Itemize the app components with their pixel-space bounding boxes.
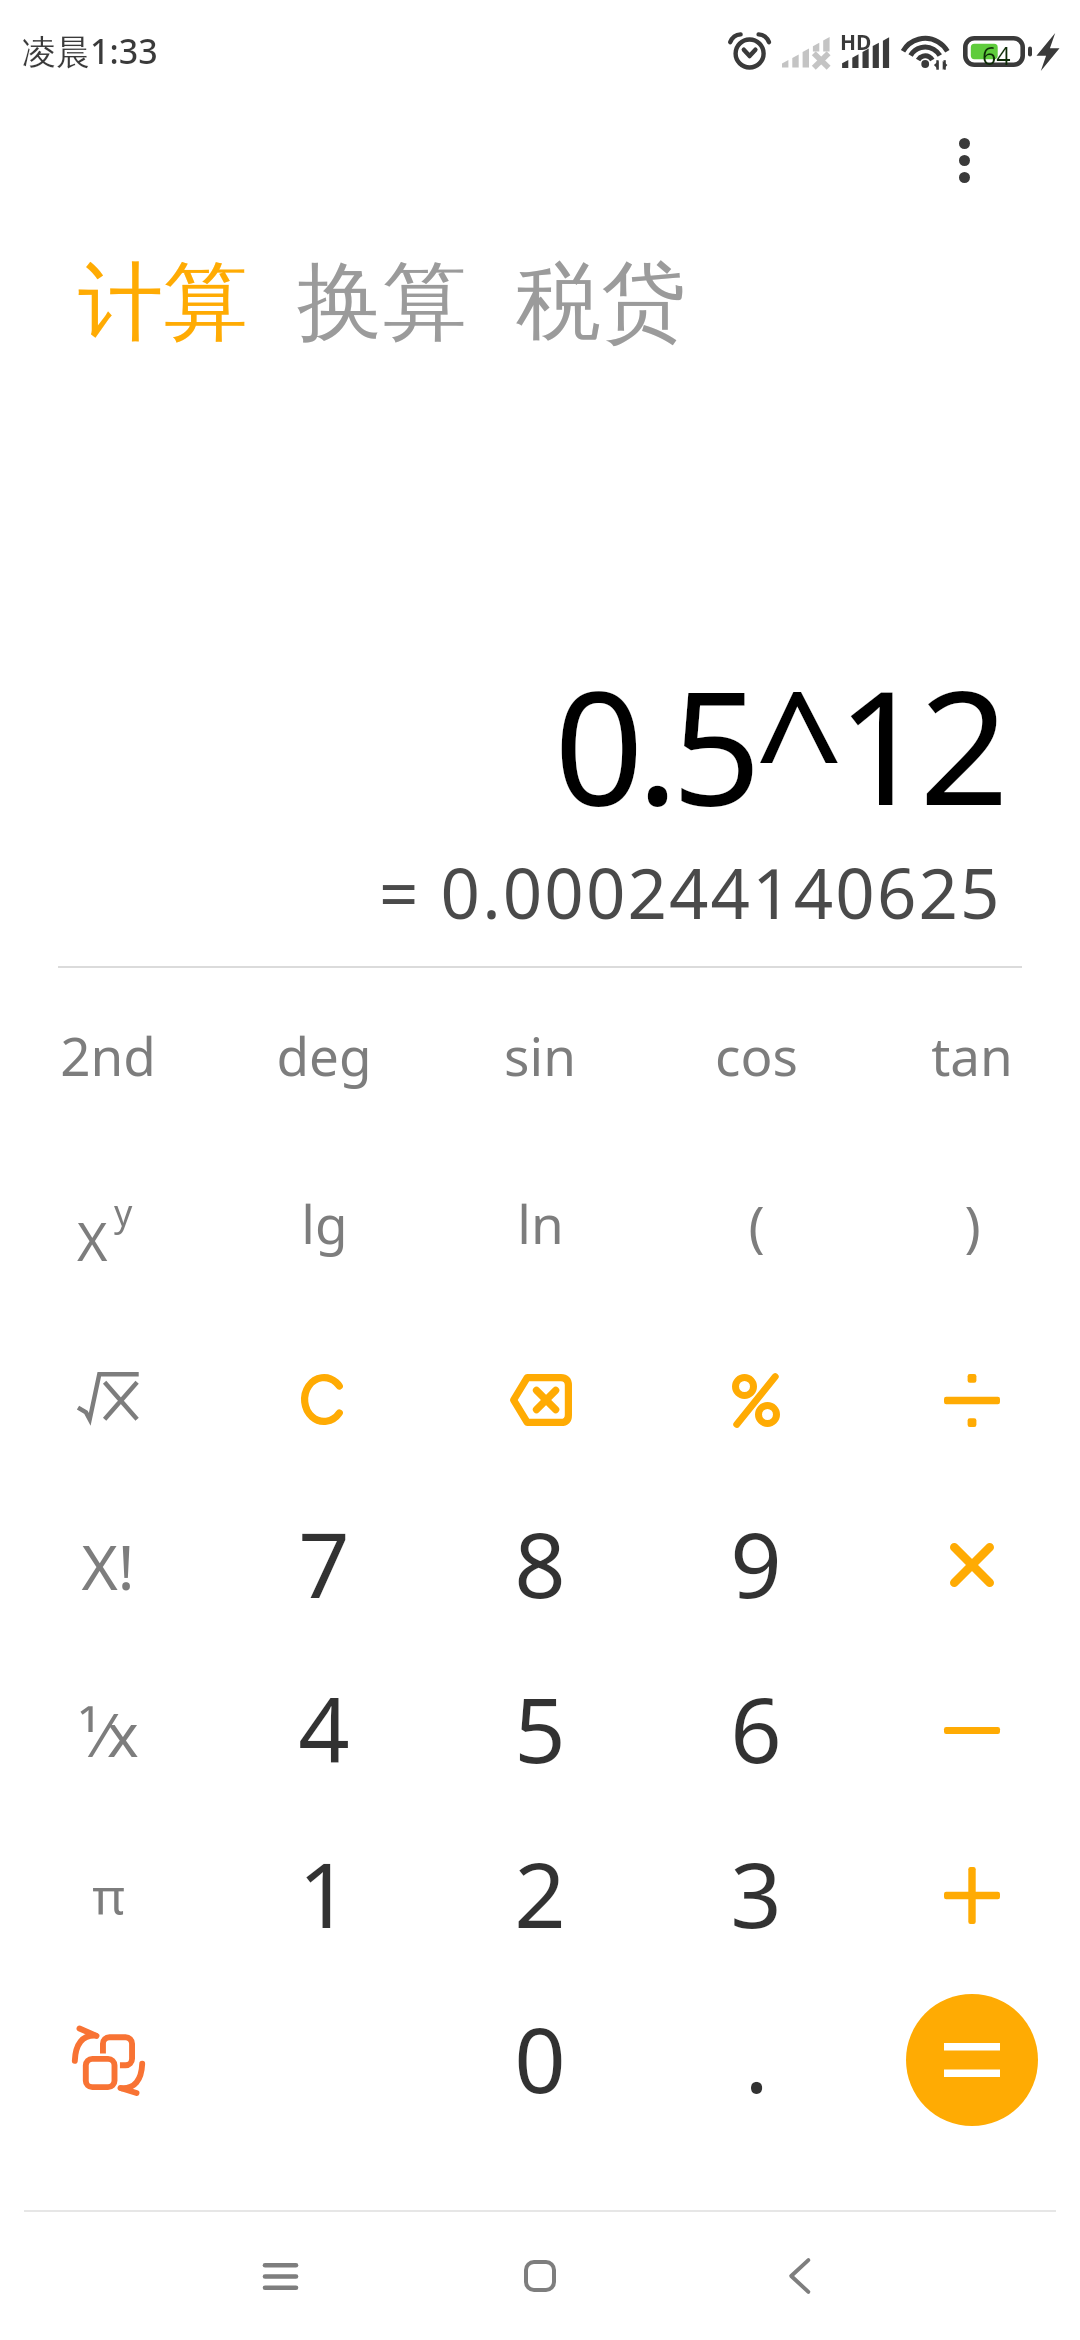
staticText: 6 <box>730 1667 782 1790</box>
staticText: ¹⁄x <box>78 1693 139 1775</box>
button[interactable]: cos <box>648 970 864 1139</box>
button[interactable]: 3 <box>648 1809 864 1978</box>
button[interactable]: π <box>0 1811 216 1980</box>
button[interactable]: Multiply <box>864 1480 1080 1649</box>
button[interactable]: . <box>648 1974 864 2143</box>
staticText: 4 <box>298 1667 350 1790</box>
button[interactable]: Divide <box>864 1316 1080 1485</box>
button[interactable]: ) <box>864 1140 1080 1309</box>
staticText: lg <box>301 1187 348 1259</box>
button[interactable]: 计算 <box>78 249 248 356</box>
button[interactable]: 9 <box>648 1479 864 1648</box>
staticText: 0 <box>514 1997 566 2120</box>
button[interactable]: Minus <box>864 1646 1080 1815</box>
button[interactable]: 6 <box>648 1644 864 1813</box>
staticText: 1 <box>298 1832 350 1955</box>
staticText: ( <box>748 1188 765 1262</box>
button[interactable]: 税贷 <box>516 249 686 356</box>
staticText: 5 <box>514 1667 566 1790</box>
staticText: 0.5^12 <box>554 637 1002 817</box>
staticText: ln <box>517 1187 564 1259</box>
staticText: 8 <box>514 1502 566 1625</box>
staticText: y <box>114 1188 133 1237</box>
button[interactable]: Clear <box>216 1315 432 1484</box>
staticText: cos <box>715 1019 798 1091</box>
button[interactable]: Plus <box>864 1811 1080 1980</box>
button[interactable]: Convert <box>0 1977 216 2146</box>
staticText: sin <box>504 1019 576 1091</box>
staticText: X <box>77 1205 108 1269</box>
button[interactable]: Equals <box>864 1981 1080 2150</box>
staticText: . <box>744 1997 769 2120</box>
staticText: = 0.000244140625 <box>379 845 1002 927</box>
staticText: 换算 <box>297 249 467 356</box>
staticText: 64 <box>982 38 1011 69</box>
staticText: 税贷 <box>516 249 686 356</box>
button[interactable]: 2 <box>432 1809 648 1978</box>
button[interactable]: Backspace <box>432 1315 648 1484</box>
button[interactable]: sin <box>432 970 648 1139</box>
button[interactable]: Square root <box>0 1311 216 1480</box>
button[interactable]: deg <box>216 970 432 1139</box>
button[interactable]: Recents <box>190 2212 370 2340</box>
button[interactable]: 8 <box>432 1479 648 1648</box>
button[interactable]: ¹⁄x <box>0 1649 216 1818</box>
staticText: HD <box>840 28 872 57</box>
staticText: π <box>92 1862 125 1930</box>
staticText: X! <box>81 1524 135 1608</box>
staticText: 7 <box>298 1502 350 1625</box>
staticText: ) <box>964 1188 981 1262</box>
staticText: tan <box>931 1019 1013 1091</box>
button[interactable]: 5 <box>432 1644 648 1813</box>
button[interactable]: More options <box>908 104 1020 216</box>
button[interactable]: tan <box>864 970 1080 1139</box>
button[interactable]: ln <box>432 1138 648 1307</box>
staticText: 2 <box>514 1832 566 1955</box>
button[interactable]: Percent <box>648 1316 864 1485</box>
button[interactable]: 0 <box>432 1974 648 2143</box>
button[interactable]: X <box>0 1138 216 1307</box>
button[interactable]: lg <box>216 1138 432 1307</box>
button[interactable]: 1 <box>216 1809 432 1978</box>
staticText: 计算 <box>78 249 248 356</box>
staticText: 9 <box>730 1502 782 1625</box>
button[interactable]: ( <box>648 1140 864 1309</box>
button[interactable]: 2nd <box>0 970 216 1139</box>
button[interactable]: Back <box>710 2212 890 2340</box>
staticText: 3 <box>730 1832 782 1955</box>
button[interactable]: 4 <box>216 1644 432 1813</box>
button[interactable]: X! <box>0 1481 216 1650</box>
staticText: 凌晨1:33 <box>22 28 158 74</box>
staticText: deg <box>276 1019 372 1091</box>
button[interactable]: 7 <box>216 1479 432 1648</box>
button[interactable]: Home <box>450 2212 630 2340</box>
staticText: 2nd <box>60 1019 156 1091</box>
button[interactable]: 换算 <box>297 249 467 356</box>
